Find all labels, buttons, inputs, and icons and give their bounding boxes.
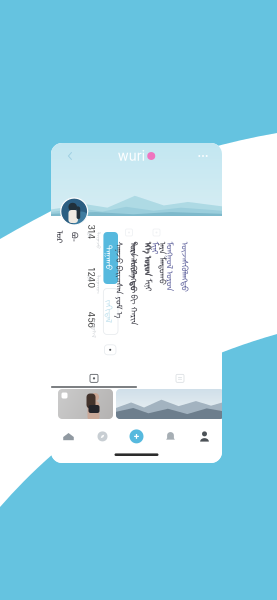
staticText: 314	[80, 230, 95, 241]
button[interactable]: Home	[51, 426, 85, 446]
staticText: ᠨᠠᠷᠠ ᠮᠠᠨᠳᠤᠬᠤ ᠡᠬᠡ ᠣᠷᠣᠨ	[129, 254, 172, 284]
staticText: ᠪᠣᠯᠣᠷ	[62, 224, 73, 253]
button[interactable]: ᠵᠠᠬᠢᠳᠠᠯ	[103, 288, 118, 334]
staticText: 456	[80, 317, 96, 328]
button[interactable]: Back	[60, 147, 80, 165]
staticText: ᠦᠵᠡᠰᠬᠦᠯᠡᠩᠲᠦ ᠮᠣᠩᠭᠣᠯ ᠣᠷᠣᠨ ᠮᠢᠨᠢ	[140, 251, 190, 296]
staticText: ᠡᠬᠡ ᠣᠷᠣᠨ ᠮᠢᠨᠢ ᠦᠵᠡᠰᠬᠦᠯᠡᠩᠲᠦ	[116, 253, 166, 283]
staticText: wuri	[118, 148, 145, 164]
button[interactable]: Explore	[85, 426, 119, 446]
button[interactable]: Profile	[187, 426, 221, 446]
button[interactable]: Photo 2	[116, 389, 224, 419]
button[interactable]: Notifications	[153, 426, 187, 446]
button[interactable]: ᠳᠠᠭᠠᠬᠤ	[103, 232, 118, 284]
button[interactable]: Create	[119, 426, 153, 446]
staticText: ᠳᠠᠭᠠᠭᠴᠢᠳ	[84, 276, 104, 294]
button[interactable]: List view	[137, 372, 223, 390]
button[interactable]: Photo 1	[58, 389, 113, 419]
staticText: ᠨᠡᠢᠲᠡᠯᠡᠯ	[84, 324, 103, 334]
staticText: ᠵᠠᠬᠢᠳᠠᠯ	[99, 304, 122, 319]
staticText: ᠲᠡᠷᠡ ᠦᠶ᠎ᠡ ᠳᠦ ᠪᠢ ᠬᠠᠷᠢᠨ ᠰᠠᠨᠠᠵᠤ ᠪᠠᠢᠭᠰᠠᠨ ᠶᠤᠮ…	[79, 276, 163, 306]
button[interactable]: More options	[193, 147, 213, 165]
staticText: ᠳᠠᠭᠠᠵᠤ ᠪᠤᠢ	[84, 233, 101, 251]
button[interactable]: More	[104, 345, 116, 355]
staticText: 1240	[80, 273, 101, 284]
button[interactable]: Grid view	[51, 372, 137, 390]
staticText: ᠳᠠᠭᠠᠬᠤ	[98, 250, 123, 265]
